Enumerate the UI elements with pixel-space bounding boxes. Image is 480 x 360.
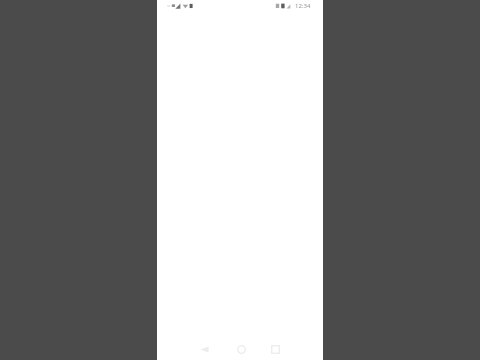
button[interactable]: Back: [193, 338, 215, 360]
button[interactable]: Home: [230, 338, 252, 360]
staticText: 12:34: [295, 2, 311, 10]
button[interactable]: Recent apps: [264, 338, 286, 360]
